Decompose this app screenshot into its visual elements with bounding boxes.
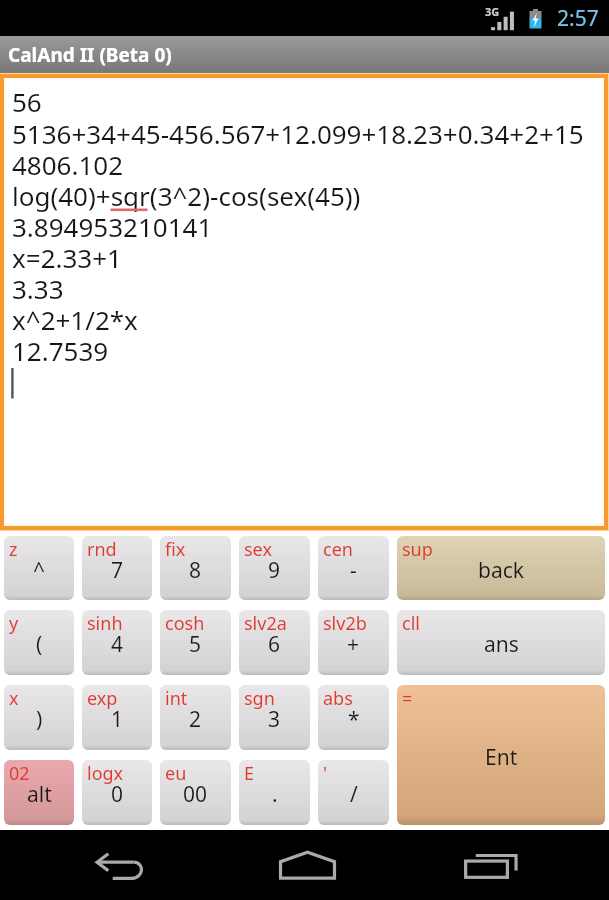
staticText: + xyxy=(347,630,360,659)
staticText: eu xyxy=(165,761,187,786)
button[interactable]: slv2a xyxy=(239,610,310,675)
staticText: cen xyxy=(323,537,353,562)
button[interactable]: eu xyxy=(160,760,231,825)
button[interactable]: Home xyxy=(214,830,400,900)
button[interactable]: cen xyxy=(318,536,389,600)
staticText: 3 xyxy=(268,705,281,734)
staticText: rnd xyxy=(87,537,117,562)
staticText: 8 xyxy=(189,556,202,585)
staticText: ) xyxy=(36,705,43,734)
button[interactable]: slv2b xyxy=(318,610,389,675)
staticText: * xyxy=(348,705,360,734)
button[interactable]: 02 xyxy=(4,760,74,825)
staticText: 2 xyxy=(189,705,202,734)
staticText: 9 xyxy=(268,556,281,585)
staticText: y xyxy=(9,611,19,636)
button[interactable]: abs xyxy=(318,685,389,750)
staticText: sex xyxy=(244,537,272,562)
staticText: - xyxy=(350,556,357,585)
staticText: 2:57 xyxy=(557,4,599,33)
staticText: 1 xyxy=(111,705,124,734)
button[interactable]: = xyxy=(397,685,605,825)
staticText: 00 xyxy=(183,780,208,809)
staticText: sgn xyxy=(244,686,275,711)
button[interactable]: logx xyxy=(82,760,152,825)
button[interactable]: fix xyxy=(160,536,231,600)
button[interactable]: cosh xyxy=(160,610,231,675)
button[interactable]: Recents xyxy=(400,830,586,900)
button[interactable]: sex xyxy=(239,536,310,600)
button[interactable]: exp xyxy=(82,685,152,750)
staticText: ' xyxy=(323,761,328,786)
button[interactable]: y xyxy=(4,610,74,675)
staticText: z xyxy=(9,537,18,562)
staticText: sup xyxy=(402,537,433,562)
staticText: sinh xyxy=(87,611,123,636)
staticText: x xyxy=(9,686,19,711)
staticText: 56 5136+34+45-456.567+12.099+18.23+0.34+… xyxy=(12,84,584,368)
staticText: ans xyxy=(484,630,519,659)
staticText: = xyxy=(402,686,413,711)
staticText: logx xyxy=(87,761,124,786)
staticText: alt xyxy=(27,780,52,809)
button[interactable]: sup xyxy=(397,536,605,600)
button[interactable]: sinh xyxy=(82,610,152,675)
staticText: CalAnd II (Beta 0) xyxy=(8,42,172,68)
staticText: / xyxy=(350,780,358,809)
staticText: cosh xyxy=(165,611,205,636)
staticText: ^ xyxy=(33,556,46,585)
staticText: back xyxy=(478,556,524,585)
staticText: 4 xyxy=(111,630,124,659)
staticText: 0 xyxy=(111,780,124,809)
button[interactable]: Back xyxy=(28,830,214,900)
staticText: int xyxy=(165,686,188,711)
staticText: 6 xyxy=(268,630,281,659)
button[interactable]: x xyxy=(4,685,74,750)
staticText: E xyxy=(244,761,255,786)
button[interactable]: int xyxy=(160,685,231,750)
staticText: abs xyxy=(323,686,353,711)
button[interactable]: E xyxy=(239,760,310,825)
staticText: . xyxy=(272,780,278,809)
staticText: exp xyxy=(87,686,118,711)
staticText: 3G xyxy=(485,4,500,19)
staticText: cll xyxy=(402,611,420,636)
staticText: ( xyxy=(36,630,43,659)
button[interactable]: sgn xyxy=(239,685,310,750)
staticText: slv2b xyxy=(323,611,367,636)
button[interactable]: rnd xyxy=(82,536,152,600)
staticText: 5 xyxy=(189,630,202,659)
button[interactable]: ' xyxy=(318,760,389,825)
staticText: Ent xyxy=(485,743,518,772)
staticText: 7 xyxy=(111,556,124,585)
staticText: slv2a xyxy=(244,611,287,636)
staticText: fix xyxy=(165,537,186,562)
button[interactable]: z xyxy=(4,536,74,600)
button[interactable]: cll xyxy=(397,610,605,675)
staticText: 02 xyxy=(9,761,30,786)
